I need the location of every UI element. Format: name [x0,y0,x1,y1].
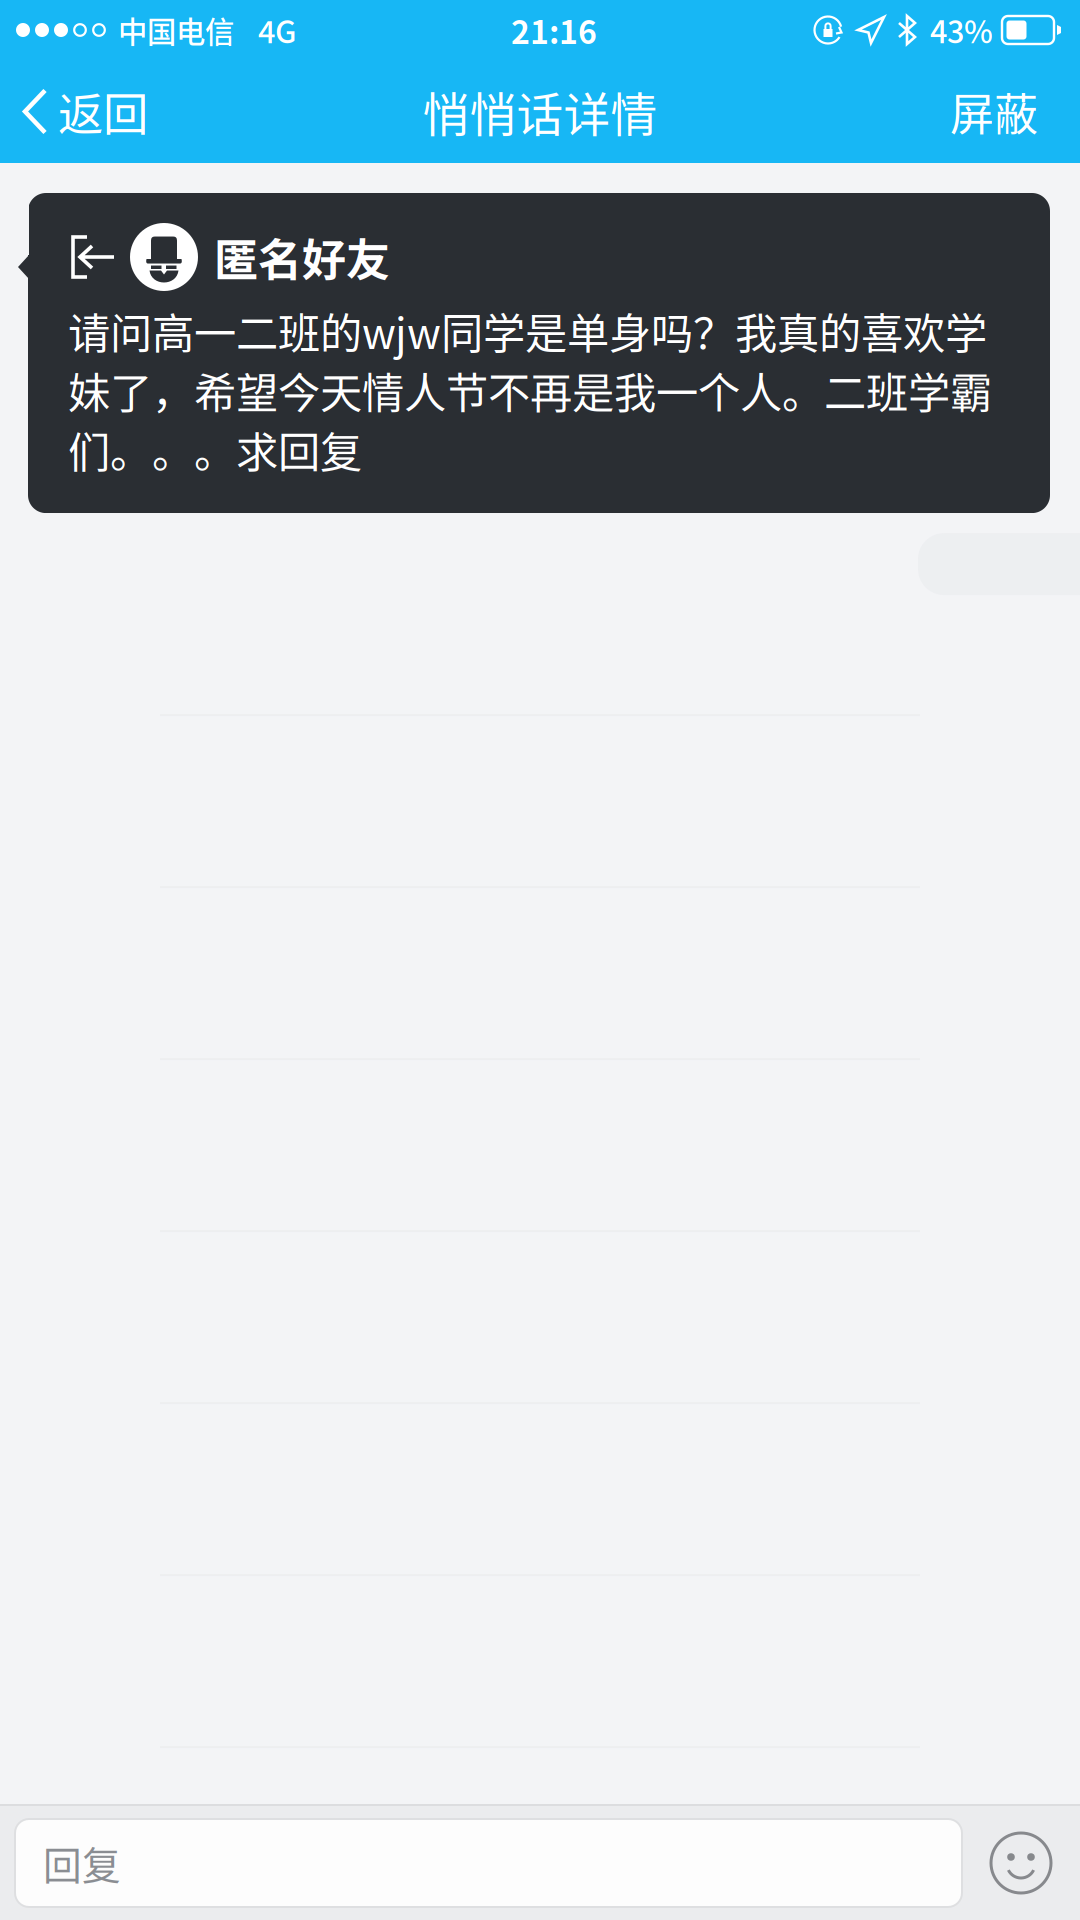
button[interactable]: 回复 [15,1819,962,1907]
staticText: 请问高一二班的wjw同学是单身吗？我真的喜欢学妹了，希望今天情人节不再是我一个人… [68,301,992,479]
staticText: 回复 [43,1835,121,1891]
staticText: 43% [930,8,993,52]
button[interactable]: 返回 [0,60,166,163]
staticText: 21:16 [511,7,597,53]
button[interactable]: Emoji [962,1806,1080,1920]
staticText: 4G [258,8,296,52]
button[interactable]: 屏蔽 [930,60,1080,163]
staticText: 屏蔽 [950,80,1038,143]
staticText: 悄悄话详情 [422,78,657,145]
staticText: 返回 [58,79,148,144]
staticText: 中国电信 [118,9,234,51]
staticText: 匿名好友 [214,225,390,289]
